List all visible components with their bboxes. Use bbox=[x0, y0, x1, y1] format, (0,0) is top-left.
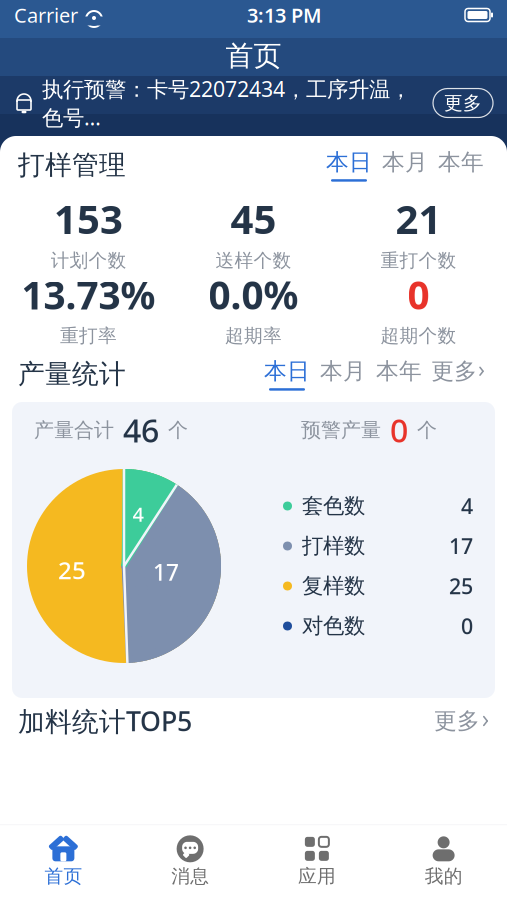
button[interactable]: 本月 bbox=[315, 357, 371, 391]
button[interactable]: 消息 bbox=[127, 825, 254, 897]
staticText: 4 bbox=[132, 501, 143, 527]
button[interactable]: 首页 bbox=[0, 825, 127, 897]
staticText: 更多 bbox=[431, 357, 477, 385]
staticText: 首页 bbox=[44, 865, 82, 888]
staticText: 0 bbox=[461, 612, 473, 640]
staticText: 25 bbox=[449, 572, 473, 600]
staticText: 对色数 bbox=[302, 613, 365, 639]
staticText: 17 bbox=[153, 557, 179, 587]
staticText: 套色数 bbox=[302, 493, 365, 519]
button[interactable]: 本年 bbox=[433, 148, 489, 182]
staticText: 重打率 bbox=[60, 324, 117, 347]
staticText: 3:13 PM bbox=[247, 2, 322, 28]
staticText: 21 bbox=[395, 192, 441, 245]
staticText: 0 bbox=[407, 269, 429, 320]
staticText: 送样个数 bbox=[215, 249, 291, 272]
staticText: 加料统计TOP5 bbox=[18, 703, 192, 739]
staticText: 本月 bbox=[320, 357, 366, 385]
staticText: 超期率 bbox=[225, 324, 282, 347]
staticText: 153 bbox=[54, 192, 123, 245]
staticText: Carrier bbox=[14, 2, 78, 28]
staticText: 本年 bbox=[438, 148, 484, 176]
button[interactable]: 本日 bbox=[259, 357, 315, 391]
staticText: 首页 bbox=[225, 39, 281, 73]
staticText: 预警产量 bbox=[301, 418, 381, 442]
staticText: 个 bbox=[417, 418, 437, 442]
staticText: 4 bbox=[461, 492, 473, 520]
button[interactable]: 更多 bbox=[427, 357, 489, 391]
button[interactable]: 更多 bbox=[433, 88, 493, 117]
staticText: 更多 bbox=[444, 91, 482, 114]
staticText: 0.0% bbox=[208, 269, 298, 320]
staticText: 17 bbox=[449, 532, 473, 560]
button[interactable]: 本年 bbox=[371, 357, 427, 391]
staticText: 个 bbox=[168, 418, 188, 442]
staticText: 产量合计 bbox=[34, 418, 114, 442]
staticText: 超期个数 bbox=[380, 324, 456, 347]
staticText: 我的 bbox=[425, 865, 463, 888]
staticText: 45 bbox=[230, 192, 276, 245]
button[interactable]: 本月 bbox=[377, 148, 433, 182]
staticText: 重打个数 bbox=[380, 249, 456, 272]
staticText: 13.73% bbox=[21, 269, 155, 320]
staticText: 复样数 bbox=[302, 573, 365, 599]
staticText: 本日 bbox=[264, 357, 310, 385]
staticText: 0 bbox=[390, 409, 408, 451]
staticText: 本月 bbox=[382, 148, 428, 176]
staticText: 更多 bbox=[434, 707, 480, 735]
staticText: 计划个数 bbox=[50, 249, 126, 272]
button[interactable]: 更多 bbox=[434, 707, 489, 735]
staticText: 打样数 bbox=[302, 533, 365, 559]
staticText: 应用 bbox=[298, 865, 336, 888]
staticText: 25 bbox=[58, 554, 86, 586]
staticText: 执行预警：卡号22072434，工序升温，色号… bbox=[42, 75, 411, 131]
staticText: 消息 bbox=[171, 865, 209, 888]
staticText: 本年 bbox=[376, 357, 422, 385]
button[interactable]: 本日 bbox=[321, 148, 377, 182]
staticText: 产量统计 bbox=[18, 358, 126, 390]
button[interactable]: 应用 bbox=[253, 825, 380, 897]
staticText: 打样管理 bbox=[18, 149, 126, 181]
button[interactable]: 我的 bbox=[380, 825, 507, 897]
staticText: 本日 bbox=[326, 148, 372, 176]
staticText: 46 bbox=[123, 409, 159, 451]
